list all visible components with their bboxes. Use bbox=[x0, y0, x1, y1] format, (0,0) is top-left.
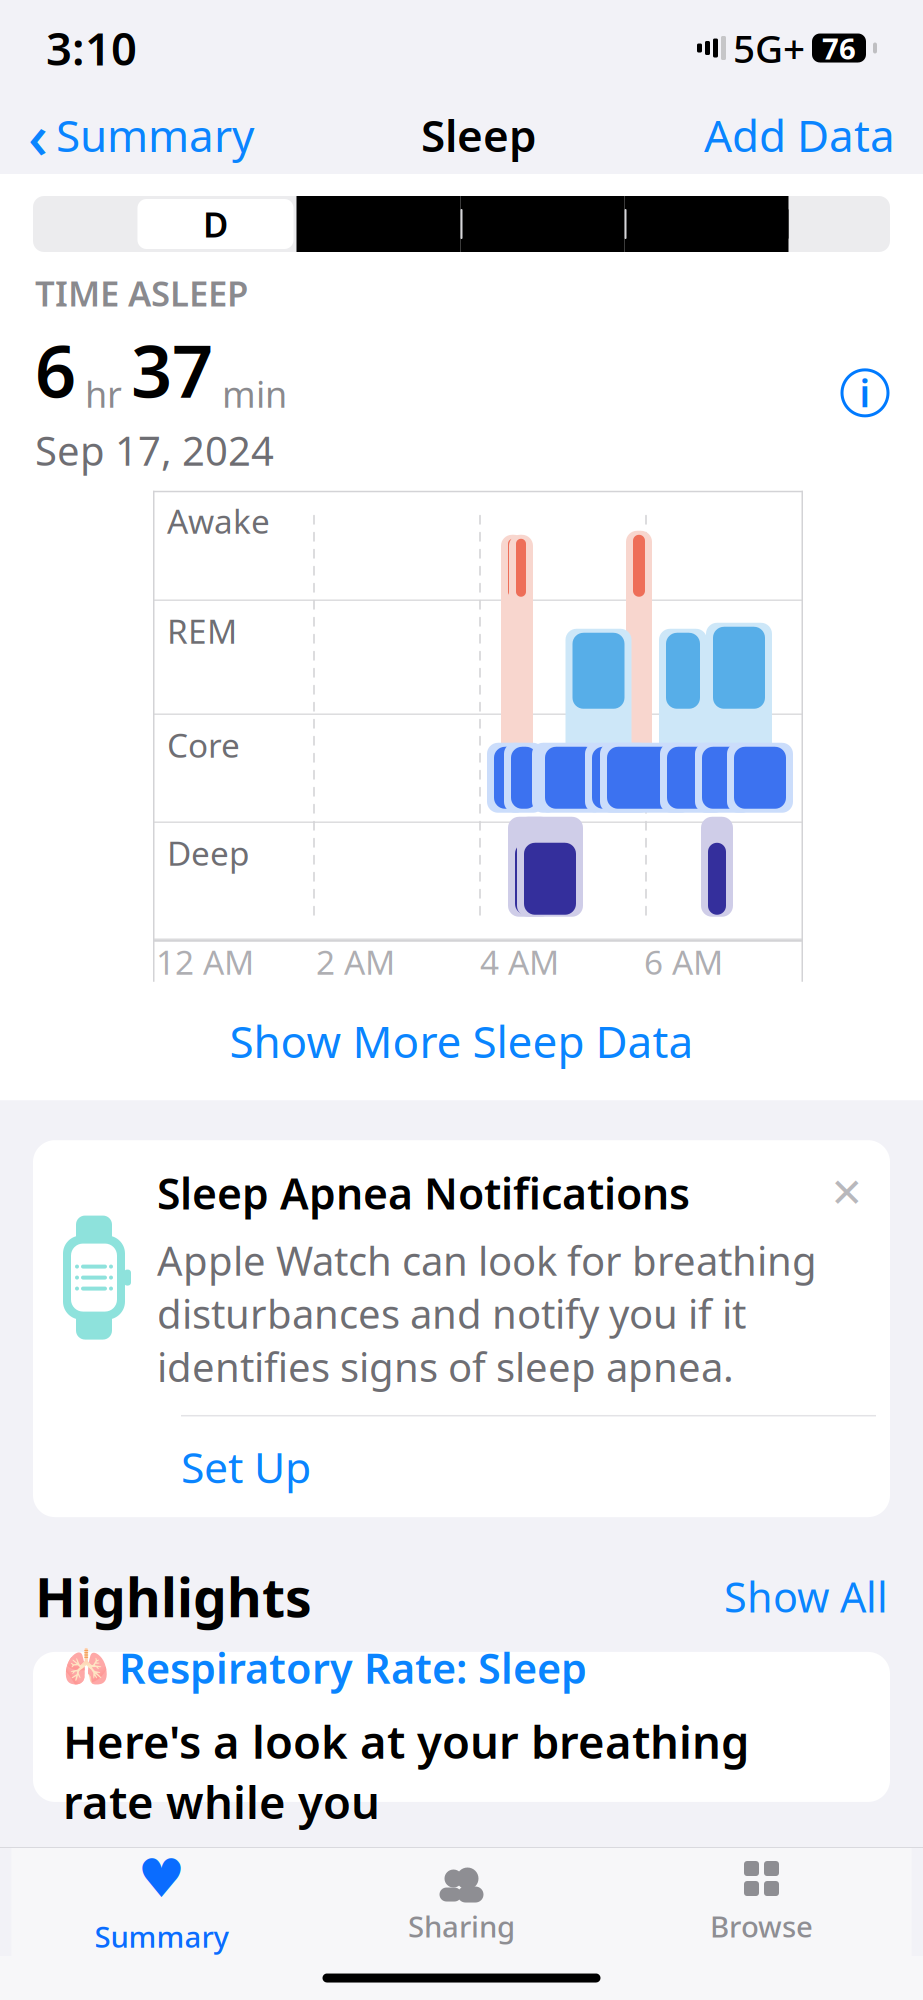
staticText: TIME ASLEEP bbox=[35, 270, 248, 316]
staticText: Set Up bbox=[181, 1438, 311, 1495]
button[interactable]: Browse bbox=[611, 1848, 911, 1956]
button[interactable]: Show More Sleep Data bbox=[0, 982, 923, 1100]
staticText: 76 bbox=[822, 28, 856, 67]
staticText: ✕ bbox=[830, 1170, 864, 1216]
staticText: Core bbox=[167, 723, 240, 767]
button[interactable]: ♥ bbox=[11, 1848, 311, 1956]
button[interactable]: ‹ bbox=[28, 86, 254, 184]
button[interactable]: W bbox=[296, 196, 460, 252]
staticText: Deep bbox=[167, 831, 250, 875]
staticText: 4 AM bbox=[480, 940, 559, 984]
staticText: Sleep bbox=[421, 106, 537, 164]
staticText: 2 AM bbox=[316, 940, 395, 984]
staticText: 12 AM bbox=[156, 940, 254, 984]
staticText: ‹ bbox=[28, 94, 48, 176]
staticText: Show More Sleep Data bbox=[229, 1012, 693, 1070]
staticText: Highlights bbox=[35, 1561, 312, 1632]
button[interactable]: Dismiss bbox=[822, 1162, 872, 1224]
staticText: REM bbox=[167, 609, 237, 653]
button[interactable]: Show All bbox=[724, 1569, 888, 1624]
staticText: 5G+ bbox=[733, 22, 805, 74]
staticText: Sleep Apnea Notifications bbox=[157, 1165, 690, 1221]
button[interactable]: Set Up bbox=[33, 1416, 890, 1517]
staticText: i bbox=[859, 368, 870, 418]
staticText: Browse bbox=[710, 1906, 813, 1945]
button[interactable]: D bbox=[134, 199, 296, 249]
staticText: Summary bbox=[56, 106, 254, 164]
button[interactable]: 6M bbox=[624, 196, 788, 252]
button[interactable]: Add Data bbox=[704, 98, 895, 172]
staticText: D bbox=[203, 201, 228, 247]
staticText: Add Data bbox=[704, 106, 895, 164]
button[interactable]: M bbox=[460, 196, 624, 252]
staticText: hr bbox=[76, 370, 131, 418]
staticText: min bbox=[213, 370, 287, 418]
staticText: Here's a look at your breathing rate whi… bbox=[63, 1711, 749, 1832]
staticText: Sharing bbox=[408, 1906, 515, 1945]
staticText: 6 bbox=[35, 322, 76, 418]
staticText: Summary bbox=[94, 1917, 228, 1956]
button[interactable]: Sharing bbox=[311, 1848, 611, 1956]
staticText: 6 AM bbox=[644, 940, 723, 984]
staticText: 3:10 bbox=[46, 18, 137, 78]
staticText: Awake bbox=[167, 499, 270, 543]
staticText: Show All bbox=[724, 1569, 888, 1624]
button[interactable]: About Time Asleep bbox=[842, 368, 888, 418]
staticText: Respiratory Rate: Sleep bbox=[119, 1640, 587, 1695]
staticText: Sep 17, 2024 bbox=[35, 424, 274, 477]
staticText: ♥ bbox=[137, 1848, 185, 1909]
staticText: Apple Watch can look for breathing distu… bbox=[157, 1234, 817, 1393]
staticText: 37 bbox=[131, 322, 213, 418]
staticText: 🫁 bbox=[63, 1646, 109, 1689]
